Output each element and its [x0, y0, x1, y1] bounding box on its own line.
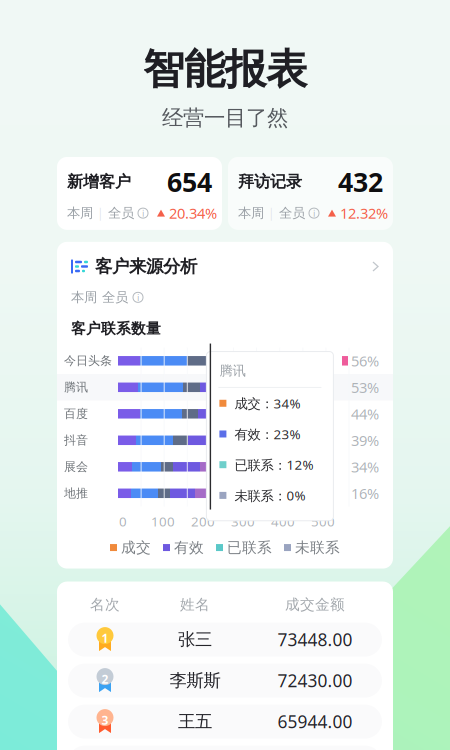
staticText: 12.32% — [340, 203, 388, 223]
staticText: 100 — [151, 512, 175, 530]
staticText: 李斯斯 — [169, 670, 220, 691]
staticText: 智能报表 — [143, 44, 307, 95]
staticText: 成交：34% — [234, 394, 300, 412]
staticText: 张三 — [178, 629, 212, 650]
staticText: 已联系：12% — [234, 456, 313, 473]
staticText: 本周 — [67, 205, 93, 221]
staticText: 39% — [351, 431, 379, 450]
staticText: 今日头条 — [64, 353, 112, 368]
staticText: 本周 — [71, 289, 97, 306]
staticText: | — [97, 205, 104, 221]
button[interactable]: 2 — [68, 664, 382, 698]
staticText: 腾讯 — [64, 380, 88, 395]
staticText: 已联系 — [227, 538, 272, 556]
staticText: 本周 — [238, 205, 264, 221]
staticText: 有效 — [174, 538, 204, 556]
staticText: 65944.00 — [277, 710, 352, 733]
staticText: 200 — [191, 512, 215, 530]
staticText: 王五 — [178, 711, 212, 732]
staticText: 全员 — [108, 205, 134, 221]
staticText: i — [142, 207, 144, 219]
staticText: 腾讯 — [219, 362, 245, 379]
staticText: 400 — [271, 512, 295, 530]
staticText: 拜访记录 — [238, 172, 302, 192]
staticText: 72430.00 — [277, 669, 352, 692]
staticText: 56% — [351, 351, 379, 371]
staticText: 全员 — [279, 205, 305, 221]
staticText: 0 — [119, 512, 127, 530]
staticText: 抖音 — [64, 433, 88, 448]
button[interactable]: 1 — [68, 623, 382, 657]
staticText: 未联系：0% — [234, 486, 305, 504]
staticText: 名次 — [90, 596, 120, 614]
button[interactable]: 3 — [68, 705, 382, 739]
staticText: 客户来源分析 — [95, 256, 197, 277]
staticText: 300 — [231, 512, 255, 530]
staticText: 客户联系数量 — [71, 319, 161, 337]
staticText: 新增客户 — [67, 172, 131, 192]
staticText: 经营一目了然 — [162, 105, 288, 131]
staticText: 姓名 — [180, 596, 210, 614]
staticText: 成交 — [121, 538, 151, 556]
staticText: 73448.00 — [277, 628, 352, 651]
staticText: 百度 — [64, 406, 88, 421]
staticText: 53% — [351, 378, 379, 397]
staticText: 16% — [351, 484, 379, 503]
staticText: 全员 — [102, 289, 128, 306]
staticText: 地推 — [64, 486, 88, 501]
staticText: 654 — [167, 164, 212, 199]
staticText: i — [313, 207, 315, 219]
staticText: 有效：23% — [234, 425, 300, 443]
staticText: 20.34% — [169, 203, 217, 223]
staticText: 3 — [101, 712, 108, 728]
staticText: 44% — [351, 404, 379, 424]
staticText: 展会 — [64, 459, 88, 474]
staticText: 34% — [351, 457, 379, 477]
staticText: 432 — [338, 164, 383, 199]
button[interactable]: 新增客户 — [57, 157, 222, 230]
staticText: 2 — [101, 671, 108, 687]
staticText: | — [268, 205, 275, 221]
staticText: 成交金额 — [285, 596, 345, 614]
button[interactable]: 客户来源分析 — [57, 242, 393, 277]
staticText: 500 — [311, 512, 335, 530]
staticText: i — [137, 291, 139, 303]
button[interactable]: 拜访记录 — [228, 157, 393, 230]
staticText: 1 — [101, 630, 108, 646]
staticText: 未联系 — [295, 538, 340, 556]
